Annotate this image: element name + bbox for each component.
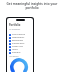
staticText: Loans bbox=[12, 48, 18, 51]
button[interactable]: Loans bbox=[7, 48, 33, 51]
staticText: Investments bbox=[12, 36, 25, 39]
staticText: Get meaningful insights into your portfo… bbox=[5, 2, 59, 10]
button[interactable]: Retirement bbox=[7, 39, 33, 42]
button[interactable]: Savings goal bbox=[7, 42, 33, 45]
staticText: Savings goal bbox=[12, 42, 25, 45]
staticText: Net worth bbox=[9, 55, 19, 58]
staticText: Retirement bbox=[12, 39, 23, 42]
staticText: All accounts bbox=[9, 28, 21, 31]
staticText: Cash balance bbox=[12, 33, 25, 36]
staticText: Property bbox=[12, 51, 21, 54]
button[interactable]: Credit card bbox=[7, 45, 33, 48]
staticText: Credit card bbox=[12, 45, 23, 48]
button[interactable]: Investments bbox=[7, 36, 33, 39]
button[interactable]: Cash balance bbox=[7, 33, 33, 36]
button[interactable]: Property bbox=[7, 51, 33, 54]
staticText: Portfolio bbox=[9, 23, 21, 27]
